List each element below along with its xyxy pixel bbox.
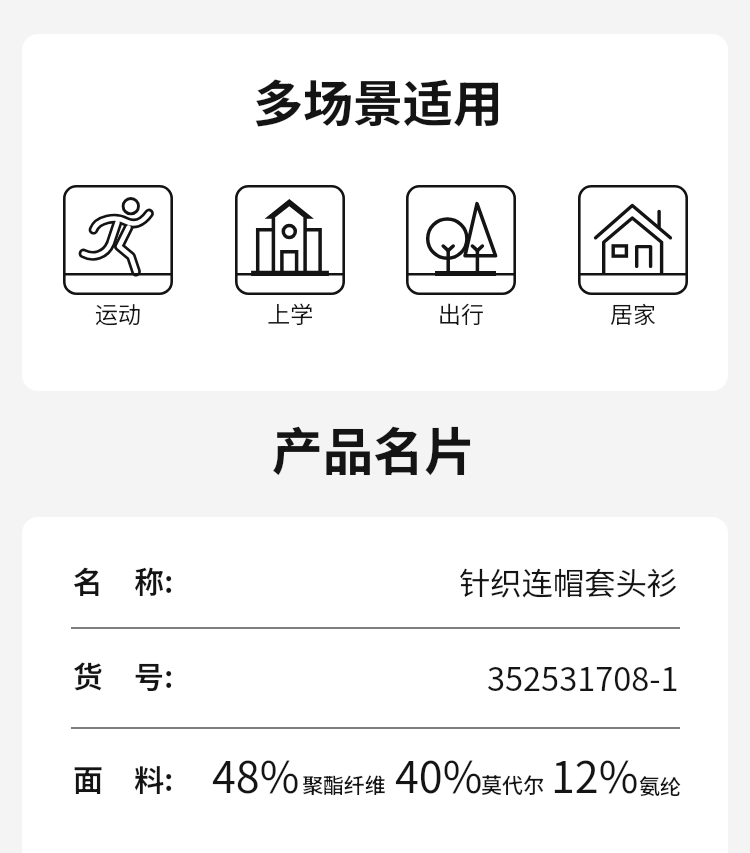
- staticText: 12%: [551, 743, 639, 805]
- button[interactable]: 居家: [578, 185, 688, 337]
- staticText: 料:: [134, 756, 174, 799]
- button[interactable]: 运动: [63, 185, 173, 337]
- staticText: 货: [73, 653, 103, 696]
- staticText: 针织连帽套头衫: [459, 559, 679, 604]
- staticText: 48%: [212, 743, 300, 805]
- staticText: 居家: [610, 296, 656, 329]
- button[interactable]: 上学: [235, 185, 345, 337]
- staticText: 称:: [134, 558, 174, 601]
- staticText: 出行: [438, 296, 484, 329]
- staticText: 面: [73, 756, 103, 799]
- staticText: 40%: [395, 743, 483, 805]
- staticText: 产品名片: [272, 411, 476, 485]
- staticText: 号:: [134, 653, 174, 696]
- staticText: 聚酯纤维: [302, 769, 386, 799]
- button[interactable]: 出行: [406, 185, 516, 337]
- staticText: 氨纶: [639, 770, 681, 800]
- staticText: 多场景适用: [253, 64, 503, 136]
- staticText: 352531708-1: [487, 653, 679, 700]
- staticText: 名: [73, 558, 103, 601]
- staticText: 上学: [267, 296, 313, 329]
- staticText: 莫代尔: [481, 769, 544, 799]
- staticText: 运动: [95, 296, 141, 329]
